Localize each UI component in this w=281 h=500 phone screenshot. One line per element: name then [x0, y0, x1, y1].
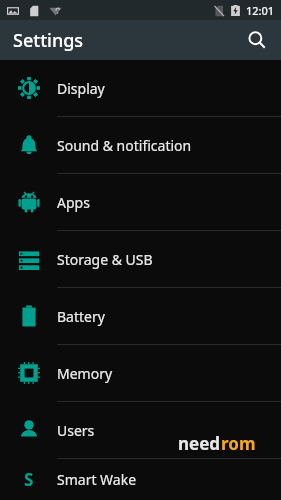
staticText: Battery	[57, 307, 105, 326]
button[interactable]: Storage & USB	[0, 231, 281, 287]
button[interactable]: Users	[0, 402, 281, 458]
staticText: 12:01	[246, 3, 275, 18]
button[interactable]: Memory	[0, 345, 281, 401]
staticText: Users	[57, 421, 95, 440]
staticText: rom	[221, 432, 256, 455]
button[interactable]: Battery	[0, 288, 281, 344]
staticText: Apps	[57, 193, 90, 212]
staticText: Sound & notification	[57, 136, 192, 155]
staticText: need	[178, 432, 221, 455]
button[interactable]: Sound & notification	[0, 117, 281, 173]
button[interactable]: Search	[241, 24, 273, 56]
button[interactable]: S	[0, 459, 281, 500]
staticText: Display	[57, 79, 105, 98]
staticText: Smart Wake	[57, 470, 137, 489]
staticText: Settings	[13, 28, 84, 53]
staticText: Memory	[57, 364, 113, 383]
button[interactable]: Apps	[0, 174, 281, 230]
staticText: S	[24, 468, 34, 491]
staticText: Storage & USB	[57, 250, 153, 269]
button[interactable]: Display	[0, 60, 281, 116]
